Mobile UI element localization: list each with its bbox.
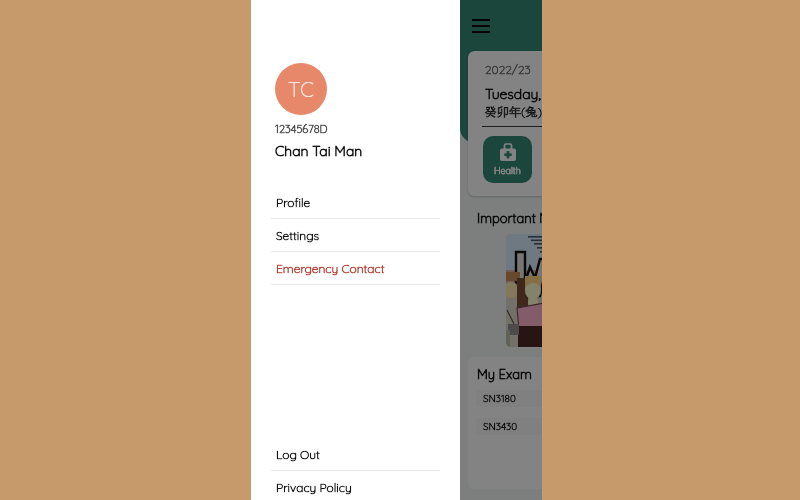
staticText: Health — [494, 165, 521, 176]
staticText: My Exam — [477, 366, 532, 382]
staticText: Log Out — [276, 447, 320, 462]
button[interactable]: SN3180 — [476, 390, 542, 407]
button[interactable]: Emergency Contact — [251, 252, 460, 284]
staticText: TC — [288, 76, 314, 102]
staticText: Chan Tai Man — [275, 142, 363, 160]
staticText: Important Notice — [477, 210, 542, 226]
staticText: 癸卯年(兔)三月廿八 — [485, 104, 542, 120]
button[interactable]: TC — [275, 63, 327, 115]
staticText: Privacy Policy — [276, 480, 352, 495]
button[interactable]: Health — [483, 136, 532, 183]
staticText: Settings — [276, 228, 320, 243]
staticText: My Exam — [477, 366, 532, 382]
button[interactable]: Log Out — [251, 438, 460, 470]
staticText: 2022/23 — [485, 62, 531, 77]
button[interactable]: Profile — [251, 186, 460, 218]
button[interactable]: Privacy Policy — [251, 471, 460, 500]
staticText: Log Out — [276, 447, 320, 462]
button[interactable]: Open navigation menu — [472, 14, 490, 38]
staticText: Chan Tai Man — [275, 142, 363, 160]
staticText: Important Notice — [477, 210, 542, 226]
button[interactable]: Settings — [251, 219, 460, 251]
staticText: Health — [494, 165, 521, 176]
button[interactable] — [506, 234, 542, 347]
staticText: 癸卯年(兔)三月廿八 — [485, 104, 542, 120]
staticText: SN3430 — [483, 420, 518, 433]
staticText: Settings — [276, 228, 320, 243]
staticText: Profile — [276, 195, 311, 210]
staticText: 2022/23 — [485, 62, 531, 77]
staticText: Tuesday, 18 Apr 2023 — [485, 85, 542, 103]
button[interactable]: SN3430 — [476, 418, 542, 435]
staticText: Emergency Contact — [276, 261, 385, 276]
staticText: Emergency Contact — [276, 261, 385, 276]
staticText: Profile — [276, 195, 311, 210]
staticText: SN3430 — [483, 420, 518, 433]
staticText: Privacy Policy — [276, 480, 352, 495]
staticText: Tuesday, 18 Apr 2023 — [485, 85, 542, 103]
button[interactable]: 2022/23 — [468, 51, 542, 196]
staticText: 12345678D — [275, 122, 328, 136]
staticText: SN3180 — [483, 392, 516, 405]
staticText: 12345678D — [275, 122, 328, 136]
staticText: SN3180 — [483, 392, 516, 405]
